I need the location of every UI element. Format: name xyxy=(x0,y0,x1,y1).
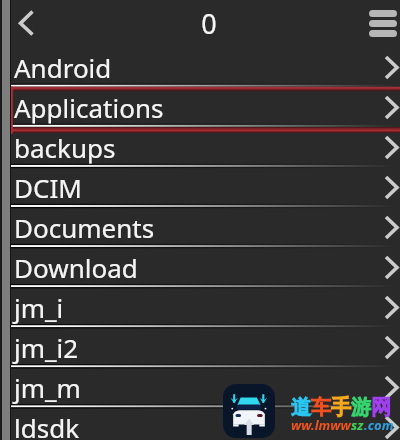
staticText: jm_i2 xyxy=(14,330,79,365)
button[interactable]: Android xyxy=(0,46,400,86)
button[interactable]: Download xyxy=(0,246,400,286)
staticText: jm_i xyxy=(14,290,64,325)
staticText: 手 xyxy=(331,395,351,420)
staticText: Android xyxy=(14,50,112,85)
staticText: jm_m xyxy=(14,370,81,405)
button[interactable]: ldsdk xyxy=(0,406,400,440)
staticText: Download xyxy=(14,250,138,285)
button[interactable]: jm_m xyxy=(0,366,400,406)
staticText: .com xyxy=(364,416,394,434)
button[interactable]: jm_i2 xyxy=(0,326,400,366)
staticText: 道 xyxy=(291,395,311,420)
staticText: Documents xyxy=(14,210,155,245)
button[interactable]: backups xyxy=(0,126,400,166)
staticText: Applications xyxy=(14,90,164,125)
staticText: ww.lmww xyxy=(291,416,351,434)
staticText: DCIM xyxy=(14,170,82,205)
staticText: 游 xyxy=(351,395,371,420)
staticText: 0 xyxy=(201,5,217,42)
staticText: backups xyxy=(14,130,116,165)
staticText: 网 xyxy=(371,395,391,420)
staticText: sz xyxy=(351,416,364,434)
button[interactable]: Menu xyxy=(365,5,400,41)
staticText: ldsdk xyxy=(14,410,80,440)
button[interactable]: DCIM xyxy=(0,166,400,206)
button[interactable]: Documents xyxy=(0,206,400,246)
button[interactable]: jm_i xyxy=(0,286,400,326)
staticText: 车 xyxy=(311,395,331,420)
button[interactable]: Applications xyxy=(0,86,400,126)
button[interactable]: Back xyxy=(12,5,46,39)
